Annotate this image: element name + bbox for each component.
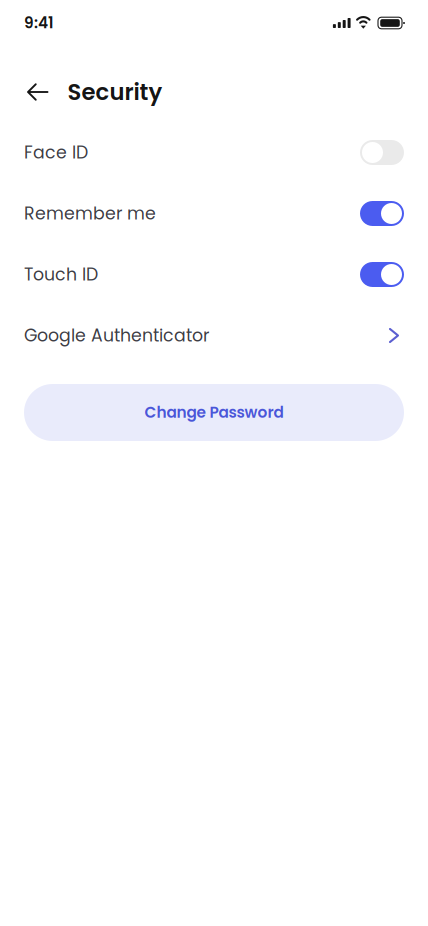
- staticText: Google Authenticator: [24, 323, 209, 348]
- staticText: Touch ID: [24, 262, 98, 287]
- button[interactable]: Remember me: [0, 183, 428, 244]
- button[interactable]: Touch ID: [0, 244, 428, 305]
- staticText: Change Password: [144, 402, 283, 423]
- button[interactable]: Change Password: [24, 384, 404, 441]
- staticText: Security: [67, 76, 162, 108]
- button[interactable]: Google Authenticator: [0, 305, 428, 366]
- staticText: Face ID: [24, 140, 88, 165]
- staticText: Remember me: [24, 201, 156, 226]
- button[interactable]: Back: [24, 74, 67, 110]
- button[interactable]: Face ID: [0, 122, 428, 183]
- staticText: 9:41: [24, 12, 54, 34]
